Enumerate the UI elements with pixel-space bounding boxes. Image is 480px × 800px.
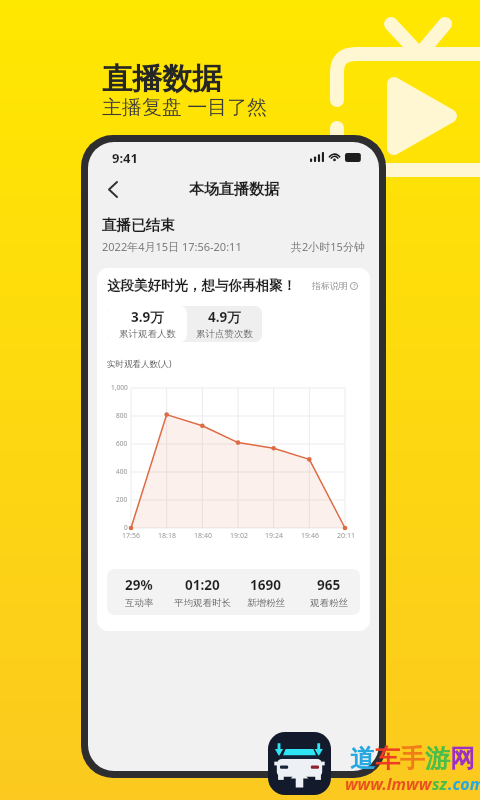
staticText: 实时观看人数(人) (107, 358, 172, 370)
staticText: 网 (450, 743, 475, 774)
staticText: ? (353, 282, 356, 290)
staticText: 19:24 (265, 531, 283, 541)
button[interactable]: 3.9万 (107, 306, 187, 342)
staticText: 主播复盘 一目了然 (102, 93, 268, 120)
staticText: 01:20 (185, 576, 220, 594)
staticText: 19:02 (230, 531, 248, 541)
staticText: 互动率 (125, 597, 154, 609)
staticText: www.lmww (345, 773, 432, 795)
staticText: 游 (425, 743, 450, 774)
button[interactable]: 4.9万 (187, 306, 262, 342)
staticText: 直播数据 (102, 60, 222, 98)
staticText: 17:56 (122, 531, 140, 541)
staticText: 累计点赞次数 (196, 328, 253, 340)
staticText: 2022年4月15日 17:56-20:11 (102, 239, 242, 254)
staticText: 20:11 (337, 531, 355, 541)
staticText: 0 (124, 523, 128, 532)
staticText: 道 (350, 743, 375, 774)
staticText: 29% (125, 576, 153, 594)
staticText: 18:18 (158, 531, 176, 541)
staticText: 4.9万 (208, 308, 241, 326)
staticText: 平均观看时长 (174, 597, 231, 609)
staticText: 这段美好时光，想与你再相聚！ (107, 277, 296, 294)
staticText: 200 (116, 495, 128, 504)
staticText: 965 (317, 576, 341, 594)
staticText: 本场直播数据 (189, 180, 279, 199)
staticText: 3.9万 (131, 308, 164, 326)
staticText: 800 (116, 411, 128, 420)
staticText: 18:40 (194, 531, 212, 541)
staticText: 累计观看人数 (119, 328, 176, 340)
staticText: 手 (400, 743, 425, 774)
button[interactable]: 指标说明 (310, 278, 360, 293)
button[interactable]: Back (96, 172, 130, 206)
staticText: 共2小时15分钟 (291, 239, 365, 254)
staticText: 车 (375, 743, 400, 774)
staticText: 400 (116, 467, 128, 476)
staticText: 直播已结束 (102, 216, 175, 234)
staticText: sz (432, 773, 448, 795)
staticText: 指标说明 (312, 280, 348, 291)
staticText: 1,000 (111, 383, 128, 392)
staticText: 19:46 (301, 531, 319, 541)
staticText: 600 (116, 439, 128, 448)
staticText: 新增粉丝 (247, 597, 285, 609)
staticText: .com (448, 773, 480, 795)
staticText: 观看粉丝 (310, 597, 348, 609)
staticText: 1690 (250, 576, 281, 594)
staticText: 9:41 (112, 149, 138, 167)
